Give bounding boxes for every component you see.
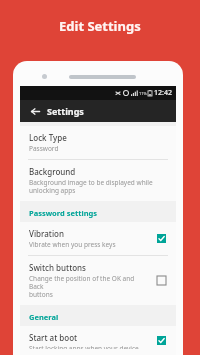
button[interactable]: Checked xyxy=(156,233,167,244)
staticText: Change the position of the OK and Back b… xyxy=(29,274,150,299)
staticText: 11% xyxy=(139,91,147,96)
button[interactable]: Unchecked xyxy=(156,275,167,286)
staticText: Vibrate when you press keys xyxy=(29,240,116,249)
staticText: Switch buttons xyxy=(29,262,86,273)
staticText: Settings xyxy=(47,105,84,117)
button[interactable]: Lock Type xyxy=(20,126,176,159)
button[interactable]: Back xyxy=(29,105,41,117)
button[interactable]: Checked xyxy=(156,335,167,346)
staticText: Password xyxy=(29,144,59,153)
staticText: Lock Type xyxy=(29,132,67,143)
staticText: Start at boot xyxy=(29,332,78,343)
staticText: General xyxy=(29,312,59,322)
staticText: Vibration xyxy=(29,228,64,239)
button[interactable]: Vibration xyxy=(20,222,176,255)
staticText: Background xyxy=(29,166,76,177)
button[interactable]: Back xyxy=(20,100,176,122)
button[interactable]: Background xyxy=(20,160,176,201)
staticText: Password settings xyxy=(29,208,98,218)
staticText: Background image to be displayed while u… xyxy=(29,178,153,195)
staticText: Start locking apps when your device star… xyxy=(29,344,139,349)
button[interactable]: Switch buttons xyxy=(20,256,176,305)
staticText: Edit Settings xyxy=(59,17,141,35)
staticText: 12:42 xyxy=(154,88,172,98)
button[interactable]: Start at boot xyxy=(20,326,176,355)
